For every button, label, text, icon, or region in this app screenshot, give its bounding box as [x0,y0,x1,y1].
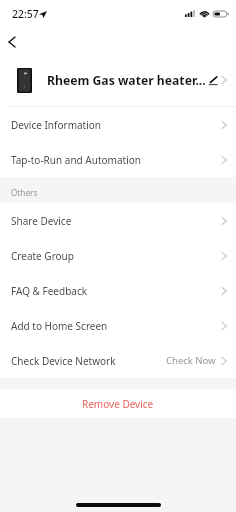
button[interactable]: FAQ & Feedback [0,273,236,308]
staticText: FAQ & Feedback [11,284,88,298]
staticText: Add to Home Screen [11,319,108,333]
staticText: Share Device [11,214,72,228]
staticText: 22:57 [12,7,39,21]
button[interactable]: Tap-to-Run and Automation [0,142,236,177]
staticText: Rheem Gas water heater... [47,72,206,89]
staticText: Check Device Network [11,354,116,368]
button[interactable]: Add to Home Screen [0,308,236,343]
staticText: Tap-to-Run and Automation [11,153,141,167]
button[interactable]: Share Device [0,203,236,238]
staticText: Remove Device [82,397,154,411]
button[interactable]: Rheem Gas water heater... [0,54,236,106]
staticText: Device Information [11,118,102,132]
button[interactable]: Back [0,30,24,54]
button[interactable]: Device Information [0,107,236,142]
staticText: Create Group [11,249,74,263]
staticText: Check Now [166,354,216,367]
button[interactable]: Rename device [207,73,219,87]
button[interactable]: Remove Device [0,389,236,418]
button[interactable]: Check Device Network [0,343,236,378]
button[interactable]: Create Group [0,238,236,273]
staticText: Others [11,187,38,198]
